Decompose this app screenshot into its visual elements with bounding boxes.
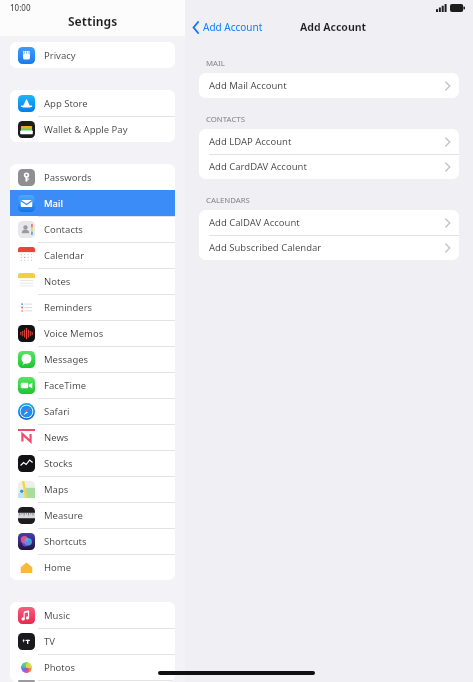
staticText: MAIL <box>206 58 225 69</box>
button[interactable]: Add CardDAV Account <box>199 154 459 179</box>
button[interactable]: Maps <box>10 476 175 502</box>
staticText: Add Account <box>203 20 263 34</box>
staticText: Privacy <box>44 49 76 62</box>
button[interactable]: Add LDAP Account <box>199 129 459 154</box>
staticText: Measure <box>44 509 83 522</box>
button[interactable]: Camera <box>10 680 175 682</box>
staticText: Notes <box>44 275 71 288</box>
button[interactable]: Add Subscribed Calendar <box>199 235 459 260</box>
staticText: 10:00 <box>10 2 31 13</box>
staticText: FaceTime <box>44 379 87 392</box>
staticText: Music <box>44 609 71 622</box>
staticText: Passwords <box>44 171 92 184</box>
staticText: TV <box>44 635 55 648</box>
button[interactable]: Photos <box>10 654 175 680</box>
button[interactable]: Wallet & Apple Pay <box>10 116 175 142</box>
staticText: Voice Memos <box>44 327 104 340</box>
staticText: Wallet & Apple Pay <box>44 123 128 136</box>
staticText: Add CalDAV Account <box>209 216 300 229</box>
button[interactable]: Messages <box>10 346 175 372</box>
button[interactable]: Reminders <box>10 294 175 320</box>
staticText: Add Mail Account <box>209 79 287 92</box>
staticText: Messages <box>44 353 89 366</box>
staticText: Settings <box>68 13 118 29</box>
staticText: Add Account <box>300 20 367 34</box>
staticText: CALENDARS <box>206 195 250 206</box>
button[interactable]: Privacy <box>10 42 175 68</box>
other: Back <box>193 22 199 33</box>
button[interactable]: Calendar <box>10 242 175 268</box>
staticText: News <box>44 431 69 444</box>
button[interactable]: TV <box>10 628 175 654</box>
staticText: CONTACTS <box>206 114 245 125</box>
staticText: Safari <box>44 405 70 418</box>
button[interactable]: Music <box>10 602 175 628</box>
staticText: Reminders <box>44 301 93 314</box>
button[interactable]: Passwords <box>10 164 175 190</box>
button[interactable]: News <box>10 424 175 450</box>
staticText: Add Subscribed Calendar <box>209 241 322 254</box>
button[interactable]: Add CalDAV Account <box>199 210 459 235</box>
staticText: Camera <box>44 680 79 682</box>
button[interactable]: Voice Memos <box>10 320 175 346</box>
staticText: Home <box>44 561 72 574</box>
staticText: Contacts <box>44 223 83 236</box>
button[interactable]: FaceTime <box>10 372 175 398</box>
staticText: Add CardDAV Account <box>209 160 307 173</box>
button[interactable]: Back <box>193 20 263 34</box>
button[interactable]: Safari <box>10 398 175 424</box>
staticText: Photos <box>44 661 76 674</box>
button[interactable]: Notes <box>10 268 175 294</box>
button[interactable]: Measure <box>10 502 175 528</box>
button[interactable]: Add Mail Account <box>199 73 459 98</box>
staticText: Mail <box>44 197 63 210</box>
button[interactable]: Contacts <box>10 216 175 242</box>
staticText: Shortcuts <box>44 535 87 548</box>
button[interactable]: Home <box>10 554 175 580</box>
staticText: App Store <box>44 97 88 110</box>
button[interactable]: Shortcuts <box>10 528 175 554</box>
button[interactable]: Mail <box>10 190 175 216</box>
staticText: Maps <box>44 483 69 496</box>
staticText: Stocks <box>44 457 73 470</box>
staticText: Add LDAP Account <box>209 135 292 148</box>
button[interactable]: Stocks <box>10 450 175 476</box>
button[interactable]: App Store <box>10 90 175 116</box>
staticText: Calendar <box>44 249 85 262</box>
